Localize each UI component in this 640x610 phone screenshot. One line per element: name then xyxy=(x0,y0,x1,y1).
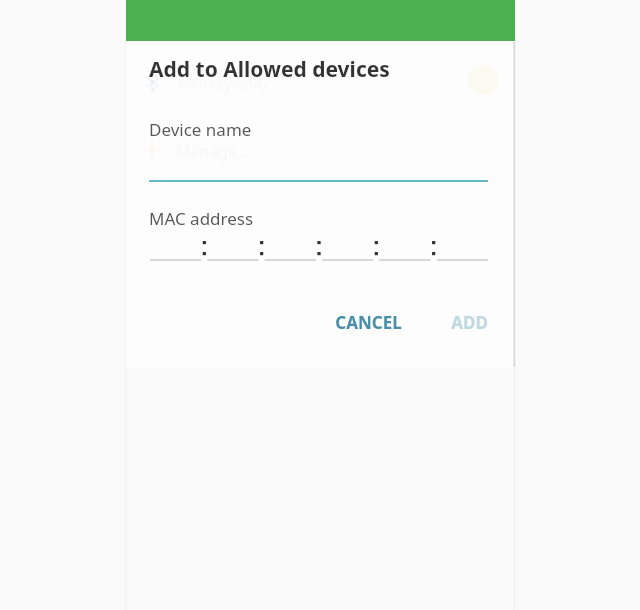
button[interactable]: ADD xyxy=(437,303,501,341)
button[interactable]: Device name input xyxy=(149,143,488,183)
staticText: MAC address xyxy=(149,207,254,230)
staticText: namayra96 xyxy=(178,72,268,95)
staticText: Device name xyxy=(149,118,252,141)
staticText: CANCEL xyxy=(335,311,402,334)
staticText: Add to Allowed devices xyxy=(149,55,390,84)
button[interactable]: CANCEL xyxy=(318,303,418,341)
button[interactable]: MAC address input xyxy=(150,236,488,264)
staticText: ADD xyxy=(451,311,488,334)
